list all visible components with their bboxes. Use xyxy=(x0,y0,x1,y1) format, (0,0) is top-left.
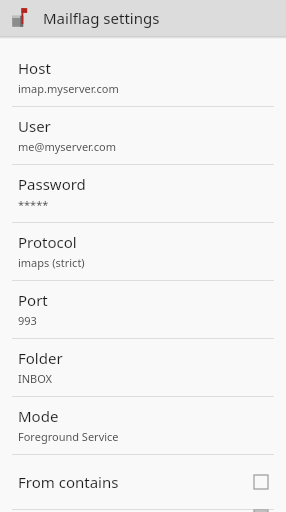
button[interactable]: User xyxy=(0,107,286,164)
staticText: Password xyxy=(18,174,86,194)
staticText: Protocol xyxy=(18,232,77,252)
button[interactable]: From contains xyxy=(0,455,286,509)
button[interactable]: From not contains xyxy=(0,510,286,512)
staticText: me@myserver.com xyxy=(18,139,117,154)
staticText: ***** xyxy=(18,197,49,212)
button[interactable]: Folder xyxy=(0,339,286,396)
button[interactable]: Protocol xyxy=(0,223,286,280)
staticText: 993 xyxy=(18,313,37,328)
staticText: User xyxy=(18,116,51,136)
staticText: Foreground Service xyxy=(18,429,119,444)
staticText: Port xyxy=(18,290,48,310)
button[interactable]: Port xyxy=(0,281,286,338)
staticText: imap.myserver.com xyxy=(18,81,119,96)
staticText: Host xyxy=(18,58,51,78)
button[interactable]: Mailflag app icon xyxy=(8,5,34,31)
staticText: From contains xyxy=(18,472,252,492)
staticText: INBOX xyxy=(18,371,53,386)
staticText: Mailflag settings xyxy=(43,8,160,28)
staticText: Mode xyxy=(18,406,59,426)
staticText: imaps (strict) xyxy=(18,255,85,270)
button[interactable]: Host xyxy=(0,49,286,106)
other: From contains xyxy=(252,473,270,491)
staticText: Folder xyxy=(18,348,63,368)
button[interactable]: Mode xyxy=(0,397,286,454)
button[interactable]: Password xyxy=(0,165,286,222)
other: From not contains xyxy=(252,510,270,512)
